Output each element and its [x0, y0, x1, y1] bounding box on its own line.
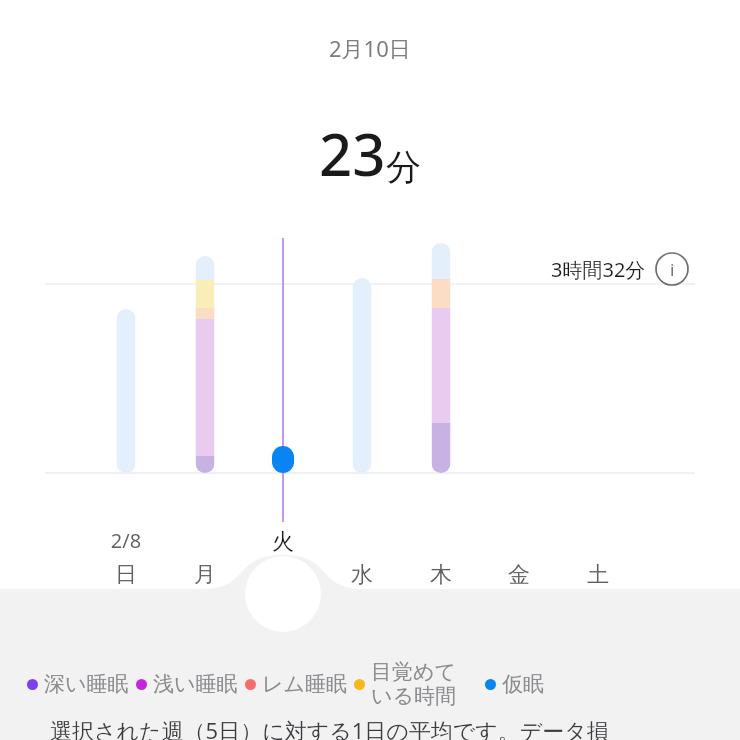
staticText: 浅い睡眠 [153, 671, 238, 697]
staticText: 水 [351, 561, 373, 589]
staticText: 木 [430, 561, 452, 589]
other: 情報 [655, 252, 689, 286]
staticText: 火 [272, 528, 294, 556]
staticText: 2月10日 [329, 33, 411, 63]
button[interactable]: 木 [411, 557, 471, 593]
staticText: 深い睡眠 [44, 671, 129, 697]
staticText: 仮眠 [502, 671, 544, 697]
button[interactable]: 月 [175, 557, 235, 593]
button[interactable]: レム睡眠 [245, 671, 354, 697]
button[interactable]: 土 [568, 557, 628, 593]
staticText: 3時間32分 [551, 256, 646, 283]
staticText: レム睡眠 [262, 671, 347, 697]
button[interactable]: 仮眠 [485, 671, 551, 697]
button[interactable]: 水 [332, 557, 392, 593]
staticText: 23 [319, 114, 386, 193]
staticText: 選択された週（5日）に対する1日の平均です。データ損 [50, 715, 609, 740]
button[interactable]: 目覚めて いる時間 [354, 659, 463, 709]
staticText: 2/8 [96, 527, 156, 554]
button[interactable]: 浅い睡眠 [136, 671, 245, 697]
button[interactable]: 深い睡眠 [27, 671, 136, 697]
button[interactable]: 日 [96, 557, 156, 593]
staticText: 目覚めて いる時間 [371, 659, 456, 709]
staticText: 日 [115, 561, 137, 589]
staticText: 土 [587, 561, 609, 589]
button[interactable]: 金 [489, 557, 549, 593]
button[interactable]: 火 [253, 524, 313, 560]
staticText: 月 [194, 561, 216, 589]
staticText: 分 [386, 145, 421, 189]
staticText: 金 [508, 561, 530, 589]
button[interactable]: 3時間32分 [551, 252, 689, 286]
staticText: i [670, 258, 675, 281]
